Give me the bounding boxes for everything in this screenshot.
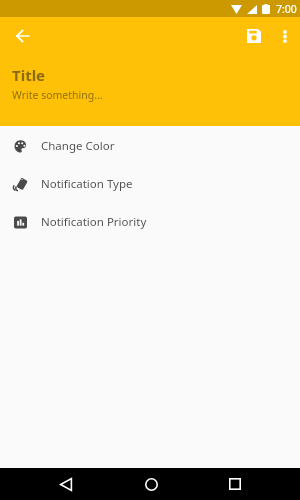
button[interactable]: Back [52,470,80,498]
staticText: Notification Priority [41,214,147,230]
button[interactable]: Notification Priority [0,203,300,241]
button[interactable]: Back [8,22,36,50]
button[interactable]: More options [273,24,297,48]
staticText: Title [12,65,46,85]
button[interactable]: Save [239,21,269,51]
button[interactable]: Change Color [0,127,300,165]
staticText: Notification Type [41,176,133,192]
button[interactable]: Notification Type [0,165,300,203]
staticText: Change Color [41,138,115,154]
button[interactable]: Home [137,470,165,498]
button[interactable]: Recent apps [221,470,249,498]
staticText: Write something... [12,88,103,102]
staticText: 7:00 [276,2,297,16]
